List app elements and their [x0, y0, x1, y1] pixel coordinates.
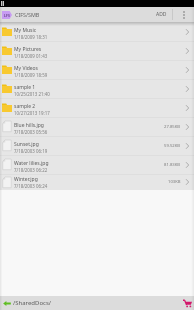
staticText: 1/18/2009 18:59	[14, 72, 48, 78]
staticText: My Music	[14, 27, 37, 34]
button[interactable]: ADD	[151, 7, 172, 22]
staticText: sample 2	[14, 103, 36, 110]
button[interactable]: More options	[173, 7, 194, 22]
button[interactable]: Sunset.jpg	[0, 136, 194, 155]
button[interactable]: Water lilies.jpg	[0, 155, 194, 174]
button[interactable]: Winter.jpg	[0, 174, 194, 190]
staticText: sample 1	[14, 84, 36, 91]
staticText: CIFS/SMB	[15, 11, 40, 18]
staticText: ADD	[156, 11, 167, 18]
staticText: 10/25/2013 21:40	[14, 91, 50, 97]
staticText: 7/18/2003 05:56	[14, 129, 48, 135]
staticText: 7/18/2003 06:24	[14, 183, 48, 189]
button[interactable]: Blue hills.jpg	[0, 117, 194, 136]
staticText: 81.83KB	[164, 162, 181, 168]
staticText: LFS	[4, 13, 10, 18]
button[interactable]: My Pictures	[0, 41, 194, 60]
staticText: Sunset.jpg	[14, 141, 39, 148]
staticText: Winter.jpg	[14, 176, 38, 183]
staticText: 59.52KB	[164, 143, 181, 149]
button[interactable]: Back	[3, 300, 11, 307]
button[interactable]: CIFS/SMB	[2, 11, 12, 19]
staticText: 27.85KB	[164, 124, 181, 130]
staticText: 7/18/2003 06:19	[14, 148, 48, 154]
button[interactable]: My Videos	[0, 60, 194, 79]
staticText: 10/27/2013 19:17	[14, 110, 50, 116]
button[interactable]: sample 1	[0, 79, 194, 98]
staticText: My Videos	[14, 65, 38, 72]
staticText: Water lilies.jpg	[14, 160, 49, 167]
staticText: 1/18/2009 18:31	[14, 34, 48, 40]
staticText: My Pictures	[14, 46, 42, 53]
staticText: 1/18/2009 01:43	[14, 53, 48, 59]
staticText: Blue hills.jpg	[14, 122, 44, 129]
staticText: /SharedDocs/	[13, 299, 52, 307]
staticText: 103KB	[168, 179, 181, 185]
staticText: 7/18/2003 06:22	[14, 167, 48, 173]
button[interactable]: Cart	[182, 298, 193, 309]
button[interactable]: sample 2	[0, 98, 194, 117]
button[interactable]: My Music	[0, 22, 194, 41]
